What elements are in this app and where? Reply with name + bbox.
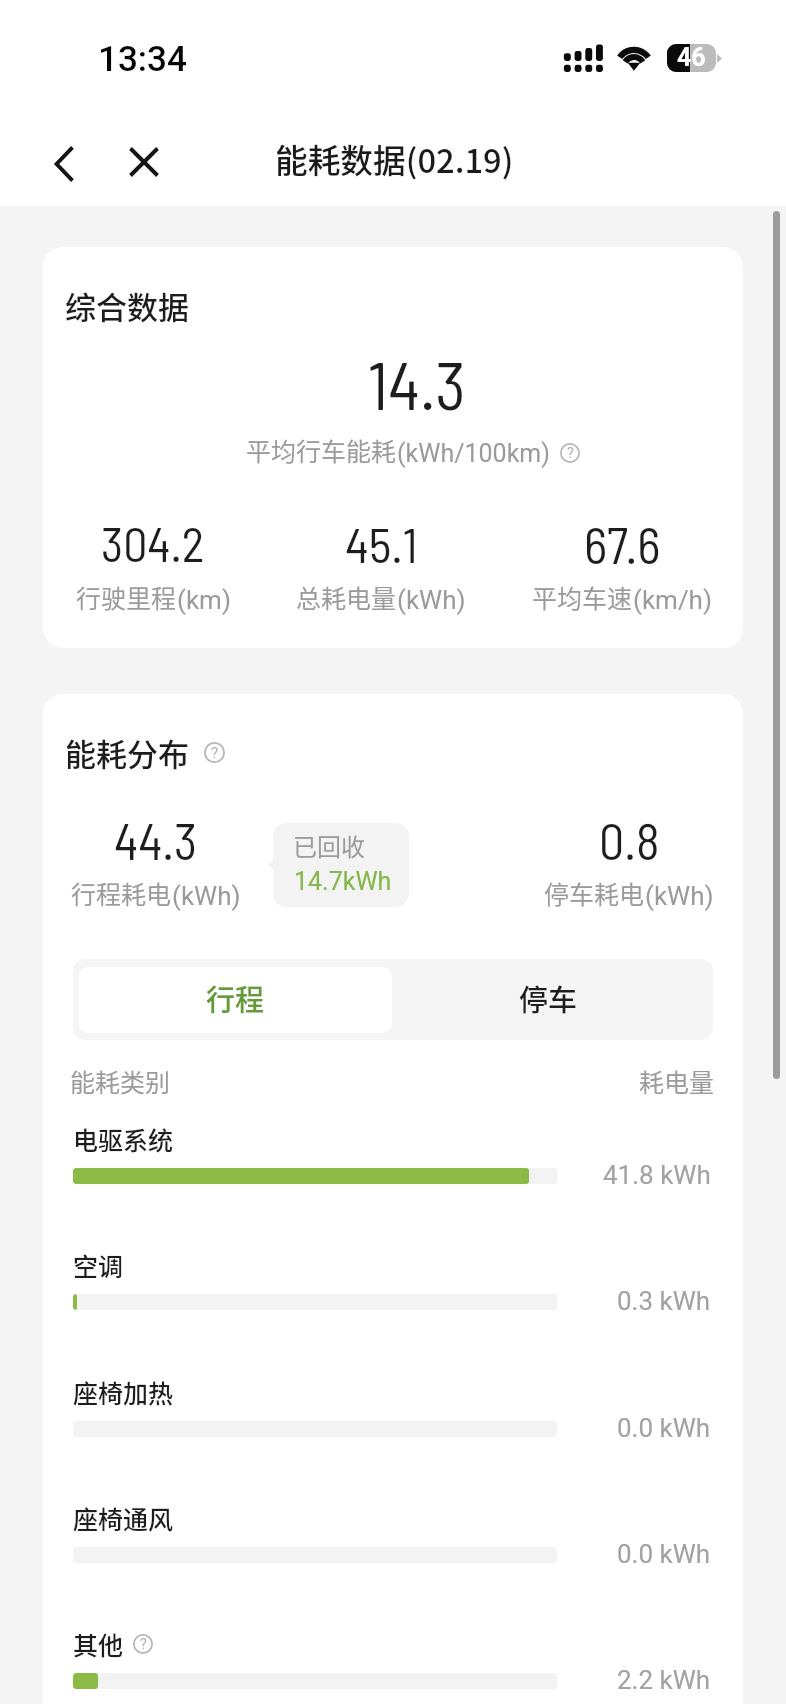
staticText: 0.0 kWh <box>617 1413 711 1443</box>
staticText: 电驱系统 <box>73 1121 174 1157</box>
button[interactable]: 停车 <box>394 959 707 1040</box>
staticText: 46 <box>677 44 706 71</box>
staticText: 0.0 kWh <box>617 1539 711 1569</box>
button[interactable]: Back <box>33 128 101 196</box>
staticText: 45.1 <box>345 514 418 573</box>
staticText: 总耗电量 <box>296 579 397 615</box>
staticText: 综合数据 <box>65 283 189 328</box>
staticText: 0.8 <box>599 810 660 870</box>
staticText: (kWh) <box>172 881 241 911</box>
button[interactable]: Close <box>110 128 178 196</box>
button[interactable]: 行程 <box>79 967 392 1033</box>
staticText: 耗电量 <box>639 1063 715 1099</box>
staticText: 13:34 <box>98 39 187 80</box>
staticText: 44.3 <box>114 810 198 870</box>
staticText: 67.6 <box>584 514 661 574</box>
staticText: (kWh/100km) <box>397 439 550 468</box>
staticText: 41.8 kWh <box>603 1160 711 1190</box>
staticText: ? <box>140 1636 147 1653</box>
staticText: ? <box>567 445 574 462</box>
staticText: 能耗类别 <box>70 1063 171 1099</box>
staticText: 14.3 <box>368 344 466 423</box>
staticText: 平均行车能耗 <box>246 432 397 468</box>
staticText: (kWh) <box>645 881 714 911</box>
staticText: 能耗分布 <box>65 730 189 775</box>
staticText: (km) <box>177 585 231 615</box>
staticText: 0.3 kWh <box>617 1286 711 1316</box>
staticText: ? <box>211 744 219 762</box>
staticText: 平均车速 <box>532 579 633 615</box>
staticText: 座椅加热 <box>73 1374 174 1410</box>
staticText: 空调 <box>73 1247 124 1283</box>
staticText: 2.2 kWh <box>617 1665 711 1695</box>
staticText: 座椅通风 <box>73 1500 174 1536</box>
staticText: (kWh) <box>397 585 466 615</box>
staticText: 停车耗电 <box>544 875 645 911</box>
staticText: 304.2 <box>101 514 205 572</box>
staticText: 行程耗电 <box>71 875 172 911</box>
staticText: 行驶里程 <box>76 579 177 615</box>
staticText: 其他 <box>73 1626 124 1662</box>
staticText: 停车 <box>519 977 578 1019</box>
staticText: (km/h) <box>633 585 712 615</box>
staticText: 行程 <box>206 977 265 1019</box>
staticText: 能耗数据(02.19) <box>275 135 514 182</box>
staticText: 14.7kWh <box>294 867 392 896</box>
staticText: 已回收 <box>293 828 365 863</box>
